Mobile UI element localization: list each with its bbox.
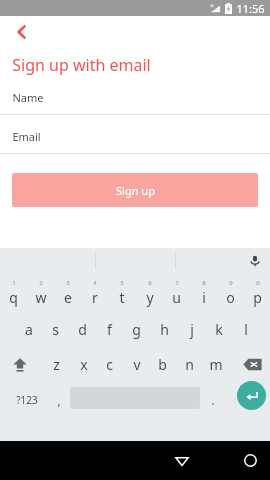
staticText: ?123 <box>16 393 38 407</box>
staticText: 7 <box>175 279 179 287</box>
staticText: l <box>244 320 248 339</box>
button[interactable]: a <box>15 313 42 346</box>
button[interactable]: Email <box>0 129 270 154</box>
button[interactable]: , <box>46 384 72 416</box>
staticText: b <box>158 355 167 374</box>
button[interactable]: 8 <box>190 276 217 310</box>
button[interactable]: . <box>200 384 226 416</box>
button[interactable]: f <box>96 313 123 346</box>
staticText: f <box>107 320 112 339</box>
staticText: 4 <box>93 279 97 287</box>
staticText: 2 <box>39 279 43 287</box>
staticText: 11:56 <box>236 1 265 16</box>
staticText: k <box>215 320 223 339</box>
button[interactable]: x <box>70 348 97 381</box>
staticText: n <box>185 355 194 374</box>
staticText: v <box>133 355 141 374</box>
staticText: 8 <box>202 279 206 287</box>
staticText: w <box>35 288 47 307</box>
staticText: z <box>53 355 60 374</box>
staticText: d <box>78 320 87 339</box>
staticText: h <box>160 320 169 339</box>
button[interactable]: l <box>232 313 259 346</box>
staticText: . <box>211 392 215 408</box>
button[interactable]: Name <box>0 90 270 115</box>
button[interactable]: 5 <box>108 276 135 310</box>
button[interactable]: Home <box>115 441 270 480</box>
button[interactable]: Back <box>47 441 270 480</box>
button[interactable]: 6 <box>136 276 163 310</box>
staticText: Email <box>12 129 41 144</box>
button[interactable]: d <box>69 313 96 346</box>
button[interactable]: k <box>205 313 232 346</box>
button[interactable]: h <box>151 313 178 346</box>
staticText: u <box>172 288 181 307</box>
staticText: 0 <box>256 279 260 287</box>
button[interactable]: 7 <box>163 276 190 310</box>
button[interactable]: c <box>96 348 123 381</box>
button[interactable]: 9 <box>217 276 244 310</box>
staticText: t <box>119 288 125 307</box>
button[interactable]: 4 <box>81 276 108 310</box>
staticText: m <box>209 355 223 374</box>
staticText: i <box>202 288 206 307</box>
staticText: g <box>132 320 141 339</box>
staticText: o <box>226 288 235 307</box>
button[interactable]: Sign up <box>12 173 258 207</box>
staticText: 6 <box>148 279 152 287</box>
button[interactable]: b <box>149 348 176 381</box>
button[interactable]: Back <box>0 16 44 48</box>
staticText: p <box>253 288 262 307</box>
staticText: Name <box>12 90 44 105</box>
staticText: 5 <box>120 279 124 287</box>
button[interactable]: n <box>176 348 203 381</box>
button[interactable]: 2 <box>27 276 54 310</box>
staticText: Sign up <box>116 183 155 198</box>
staticText: 1 <box>12 279 16 287</box>
button[interactable]: Shift <box>4 348 36 381</box>
button[interactable]: j <box>178 313 205 346</box>
button[interactable]: s <box>42 313 69 346</box>
staticText: y <box>146 288 154 307</box>
staticText: e <box>64 288 72 307</box>
staticText: 3 <box>66 279 70 287</box>
staticText: a <box>25 320 33 339</box>
button[interactable]: Voice input <box>245 251 265 271</box>
button[interactable]: 0 <box>244 276 270 310</box>
button[interactable]: Backspace <box>236 348 268 381</box>
button[interactable]: Recent apps <box>183 441 270 480</box>
staticText: , <box>57 392 61 408</box>
button[interactable]: z <box>43 348 70 381</box>
staticText: j <box>190 320 194 339</box>
button[interactable]: Enter <box>237 381 266 410</box>
staticText: x <box>80 355 88 374</box>
button[interactable]: g <box>123 313 150 346</box>
button[interactable]: 3 <box>54 276 81 310</box>
button[interactable]: m <box>202 348 229 381</box>
staticText: s <box>52 320 59 339</box>
staticText: r <box>92 288 98 307</box>
staticText: 9 <box>229 279 233 287</box>
staticText: c <box>106 355 113 374</box>
staticText: Sign up with email <box>12 54 151 76</box>
button[interactable]: ?123 <box>4 384 50 416</box>
button[interactable]: 1 <box>0 276 27 310</box>
button[interactable]: v <box>123 348 150 381</box>
staticText: q <box>9 288 18 307</box>
